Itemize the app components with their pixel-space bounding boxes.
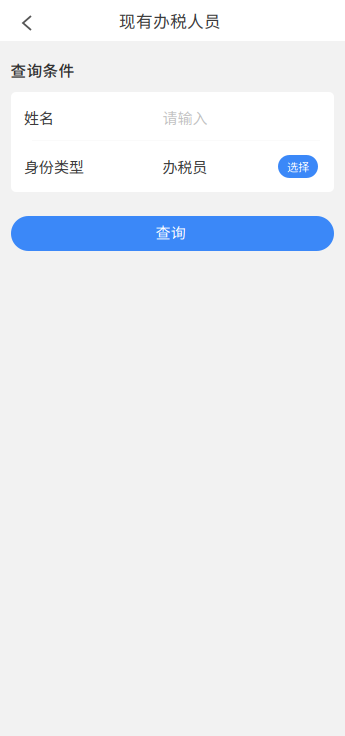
button[interactable]: 选择 (278, 155, 318, 178)
staticText: 选择 (287, 158, 309, 174)
button[interactable]: 查询 (11, 216, 334, 251)
staticText: 查询条件 (10, 59, 74, 81)
staticText: 姓名 (24, 107, 54, 128)
staticText: 请输入 (162, 107, 207, 128)
button[interactable]: 返回 (0, 0, 44, 41)
staticText: 身份类型 (24, 156, 84, 177)
staticText: 查询 (155, 221, 185, 243)
staticText: 现有办税人员 (119, 8, 221, 32)
staticText: 办税员 (162, 156, 207, 177)
